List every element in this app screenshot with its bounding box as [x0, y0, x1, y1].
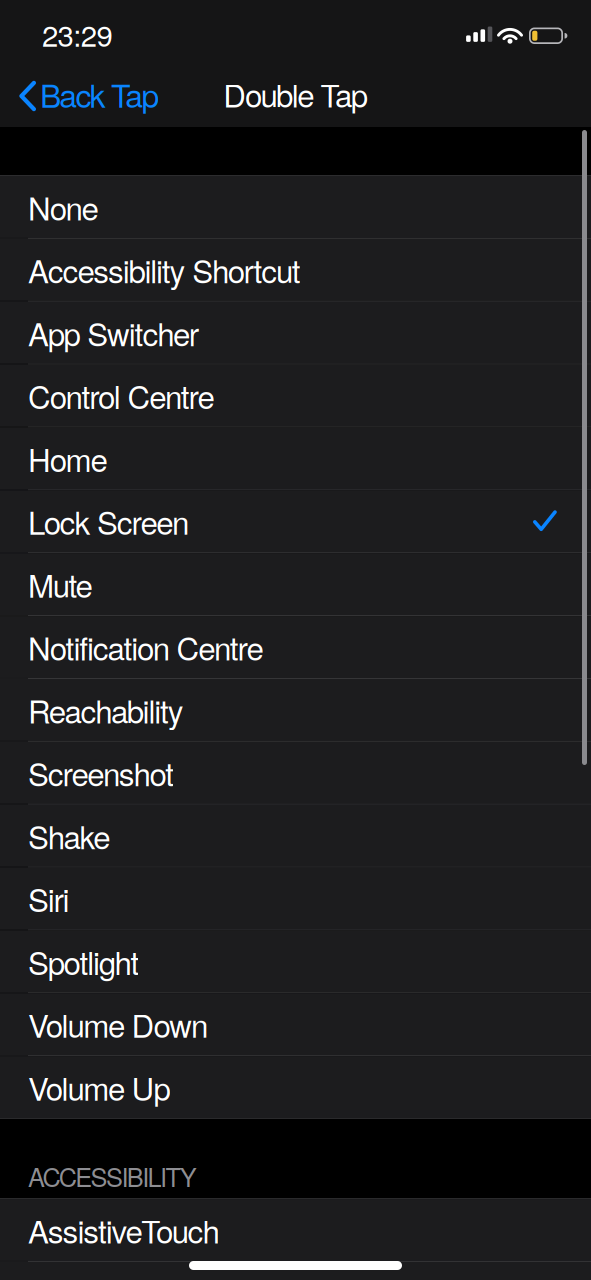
- staticText: AssistiveTouch: [28, 1208, 219, 1252]
- staticText: Lock Screen: [28, 499, 189, 544]
- staticText: Back Tap: [40, 71, 159, 117]
- button[interactable]: Control Centre: [0, 365, 591, 426]
- button[interactable]: Lock Screen: [0, 490, 591, 552]
- button[interactable]: App Switcher: [0, 302, 591, 364]
- button[interactable]: Notification Centre: [0, 616, 591, 678]
- button[interactable]: Shake: [0, 805, 591, 867]
- staticText: Screenshot: [28, 750, 174, 795]
- button[interactable]: None: [0, 176, 591, 238]
- button[interactable]: Mute: [0, 553, 591, 615]
- button[interactable]: Back Tap: [0, 60, 171, 128]
- button[interactable]: Spotlight: [0, 930, 591, 992]
- button[interactable]: AssistiveTouch: [0, 1199, 591, 1261]
- staticText: Volume Down: [28, 1002, 208, 1047]
- staticText: Mute: [28, 562, 92, 607]
- button[interactable]: Siri: [0, 868, 591, 929]
- staticText: ACCESSIBILITY: [28, 1158, 197, 1194]
- staticText: Reachability: [28, 687, 184, 732]
- button[interactable]: Home: [0, 427, 591, 489]
- staticText: Accessibility Shortcut: [28, 247, 301, 292]
- staticText: Double Tap: [223, 72, 368, 116]
- staticText: App Switcher: [28, 310, 199, 355]
- button[interactable]: Reachability: [0, 679, 591, 741]
- button[interactable]: Volume Up: [0, 1056, 591, 1118]
- staticText: 23:29: [42, 13, 112, 55]
- staticText: Home: [28, 436, 107, 481]
- staticText: Notification Centre: [28, 625, 263, 669]
- staticText: None: [28, 184, 98, 229]
- button[interactable]: Accessibility Shortcut: [0, 239, 591, 301]
- button[interactable]: Volume Down: [0, 993, 591, 1055]
- staticText: Volume Up: [28, 1065, 170, 1110]
- staticText: Shake: [28, 813, 110, 858]
- staticText: Control Centre: [28, 373, 214, 418]
- staticText: Siri: [28, 876, 69, 921]
- staticText: Spotlight: [28, 939, 139, 984]
- button[interactable]: Screenshot: [0, 742, 591, 804]
